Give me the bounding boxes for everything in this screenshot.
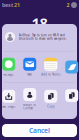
staticText: Mail <box>27 73 32 76</box>
staticText: 2 <box>66 1 69 9</box>
staticText: Save Image <box>2 105 16 108</box>
button[interactable]: Assign to Contact <box>19 88 40 110</box>
button[interactable]: Copy <box>40 90 61 108</box>
button[interactable]: Mail <box>19 58 40 76</box>
staticText: best <box>2 1 13 9</box>
button[interactable]: Add to Notes <box>40 58 61 76</box>
staticText: AirDrop. Tap to turn on Wi-Fi and Blueto… <box>19 33 67 41</box>
button[interactable]: Cancel <box>2 124 77 137</box>
staticText: 18 <box>31 13 47 32</box>
staticText: Copy <box>47 105 54 108</box>
staticText: Add to Notes <box>41 73 60 76</box>
staticText: 21 <box>13 1 20 9</box>
button[interactable]: Message <box>0 58 19 76</box>
staticText: Cancel <box>29 126 50 135</box>
staticText: Assign to Contact <box>23 103 36 110</box>
button[interactable]: Save Image <box>0 90 19 108</box>
staticText: Message <box>3 73 14 76</box>
